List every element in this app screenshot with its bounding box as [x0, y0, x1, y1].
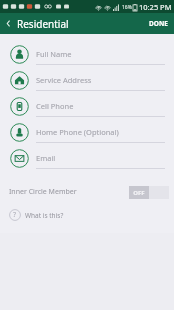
- staticText: Inner Circle Member: [9, 187, 77, 197]
- button[interactable]: Home Phone (Optional): [0, 119, 174, 145]
- staticText: DONE: [149, 19, 168, 28]
- button[interactable]: Email: [0, 145, 174, 171]
- staticText: Service Address: [36, 75, 92, 85]
- staticText: 16%: [122, 4, 132, 11]
- staticText: Email: [36, 153, 56, 163]
- staticText: OFF: [133, 189, 145, 197]
- button[interactable]: Cell Phone: [0, 93, 174, 119]
- button[interactable]: Inner Circle Member: [0, 180, 174, 204]
- button[interactable]: Full Name: [0, 41, 174, 67]
- button[interactable]: Service Address: [0, 67, 174, 93]
- button[interactable]: ?: [0, 204, 174, 226]
- staticText: What is this?: [25, 211, 64, 220]
- button[interactable]: Back: [0, 19, 15, 28]
- button[interactable]: Inner Circle Member toggle, off: [129, 186, 169, 199]
- staticText: Full Name: [36, 49, 72, 59]
- staticText: ?: [13, 210, 17, 220]
- staticText: Home Phone (Optional): [36, 127, 119, 137]
- staticText: Cell Phone: [36, 101, 74, 111]
- staticText: Residential: [17, 17, 69, 31]
- button[interactable]: DONE: [143, 16, 174, 31]
- staticText: 10:25 PM: [139, 2, 172, 12]
